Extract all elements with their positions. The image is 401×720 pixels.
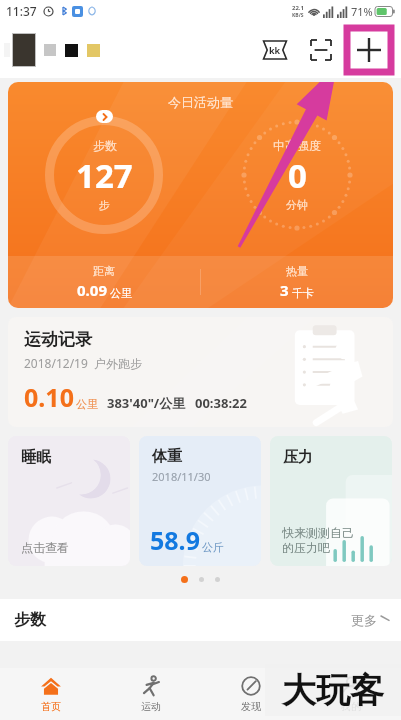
- staticText: 127: [76, 153, 133, 198]
- staticText: 步: [99, 198, 110, 212]
- staticText: KB/S: [292, 12, 304, 19]
- button[interactable]: 睡眠: [8, 436, 130, 566]
- staticText: 大玩客: [282, 669, 384, 712]
- button[interactable]: Add: [345, 26, 393, 74]
- staticText: 58.9: [150, 523, 200, 557]
- staticText: kk: [269, 44, 281, 56]
- staticText: 点击查看: [21, 540, 69, 555]
- button[interactable]: Coupons: [255, 30, 295, 70]
- button[interactable]: 今日活动量: [8, 82, 393, 308]
- staticText: 公斤: [202, 540, 224, 554]
- staticText: 的压力吧: [282, 540, 330, 555]
- button[interactable]: Steps detail: [96, 110, 113, 123]
- button[interactable]: 运动记录: [8, 317, 393, 427]
- staticText: 3: [280, 280, 289, 300]
- staticText: 公里: [76, 397, 98, 411]
- button[interactable]: 首页: [0, 668, 101, 720]
- button[interactable]: 发现: [201, 668, 301, 720]
- staticText: 0.10: [24, 380, 74, 414]
- staticText: 更多: [351, 612, 377, 628]
- staticText: 2018/12/19 户外跑步: [24, 355, 143, 371]
- button[interactable]: 压力: [270, 436, 392, 566]
- staticText: 中高强度: [273, 138, 321, 153]
- staticText: 运动: [141, 700, 161, 713]
- staticText: 千卡: [292, 286, 314, 300]
- staticText: 热量: [286, 264, 308, 278]
- staticText: 步数: [14, 610, 46, 630]
- staticText: 压力: [283, 448, 313, 467]
- staticText: 公里: [110, 286, 132, 300]
- staticText: 22.1: [292, 4, 304, 12]
- staticText: 383'40"/公里: [107, 394, 186, 412]
- button[interactable]: 体重: [139, 436, 261, 566]
- staticText: 运动记录: [24, 329, 92, 350]
- button[interactable]: Scan: [301, 30, 341, 70]
- staticText: 00:38:22: [195, 394, 247, 412]
- staticText: 首页: [41, 700, 61, 713]
- staticText: 71%: [351, 4, 373, 19]
- staticText: 体重: [152, 447, 182, 466]
- staticText: 分钟: [286, 198, 308, 212]
- staticText: 0.09: [77, 280, 107, 300]
- button[interactable]: 运动: [101, 668, 201, 720]
- staticText: 距离: [93, 264, 115, 278]
- staticText: 0: [288, 153, 307, 198]
- button[interactable]: 我的: [301, 668, 401, 720]
- staticText: 睡眠: [21, 448, 51, 467]
- staticText: 今日活动量: [8, 94, 393, 110]
- staticText: 快来测测自己: [282, 525, 354, 540]
- staticText: 发现: [241, 700, 261, 713]
- staticText: 步数: [93, 138, 117, 153]
- staticText: 我的: [341, 700, 361, 713]
- staticText: 2018/11/30: [152, 469, 211, 484]
- button[interactable]: 步数: [0, 599, 401, 641]
- staticText: 11:37: [6, 3, 37, 19]
